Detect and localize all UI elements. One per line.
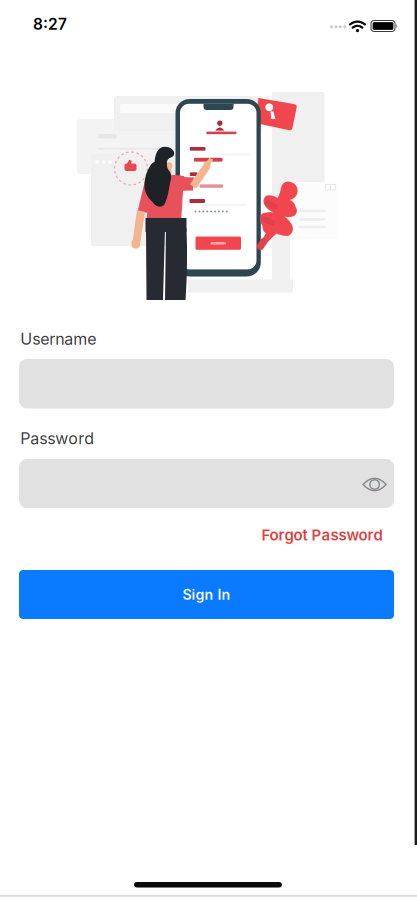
button[interactable]: Show password xyxy=(358,467,392,501)
staticText: Username xyxy=(20,329,96,349)
button[interactable]: Sign In xyxy=(19,570,394,619)
staticText: Sign In xyxy=(182,586,230,603)
button[interactable]: Password xyxy=(19,459,394,508)
staticText: 8:27 xyxy=(33,15,67,33)
button[interactable]: Forgot Password xyxy=(261,526,382,544)
staticText: Forgot Password xyxy=(261,526,382,544)
staticText: Password xyxy=(20,429,94,448)
